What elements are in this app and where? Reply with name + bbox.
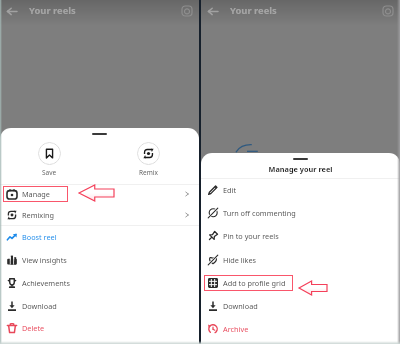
button[interactable]: Back (2, 4, 22, 19)
staticText: View insights (22, 255, 67, 265)
staticText: Download (223, 301, 258, 311)
button[interactable]: Camera (379, 2, 395, 18)
staticText: Delete (22, 323, 45, 333)
staticText: Archive (223, 324, 249, 334)
staticText: Download (22, 301, 57, 311)
staticText: Remix (139, 168, 158, 177)
staticText: Manage (22, 189, 50, 199)
button[interactable]: Back (203, 4, 223, 19)
button[interactable]: Delete (0, 316, 199, 339)
button[interactable]: Remix (133, 142, 163, 177)
staticText: Hide likes (223, 255, 257, 265)
button[interactable]: Hide likes (201, 248, 400, 271)
button[interactable]: Achievements (0, 271, 199, 294)
button[interactable]: Pin to your reels (201, 224, 400, 247)
button[interactable]: Remixing (0, 205, 199, 225)
staticText: Add to profile grid (223, 278, 286, 288)
staticText: Edit (223, 185, 237, 195)
button[interactable]: Boost reel (0, 225, 199, 248)
staticText: Remixing (22, 210, 55, 220)
button[interactable]: Manage (0, 184, 199, 204)
button[interactable]: Archive (201, 317, 400, 340)
staticText: Your reels (230, 4, 277, 17)
button[interactable]: Download (0, 294, 199, 317)
button[interactable]: Turn off commenting (201, 201, 400, 224)
button[interactable]: Add to profile grid (201, 271, 400, 294)
staticText: Boost reel (22, 232, 57, 242)
staticText: Save (42, 168, 57, 177)
button[interactable]: Edit (201, 178, 400, 201)
button[interactable]: Camera (178, 2, 194, 18)
staticText: Your reels (29, 4, 76, 17)
button[interactable]: Save (34, 142, 64, 177)
staticText: Pin to your reels (223, 231, 279, 241)
button[interactable]: Download (201, 294, 400, 317)
staticText: Manage your reel (201, 164, 400, 174)
staticText: Achievements (22, 278, 70, 288)
button[interactable]: View insights (0, 248, 199, 271)
staticText: Turn off commenting (223, 208, 296, 218)
